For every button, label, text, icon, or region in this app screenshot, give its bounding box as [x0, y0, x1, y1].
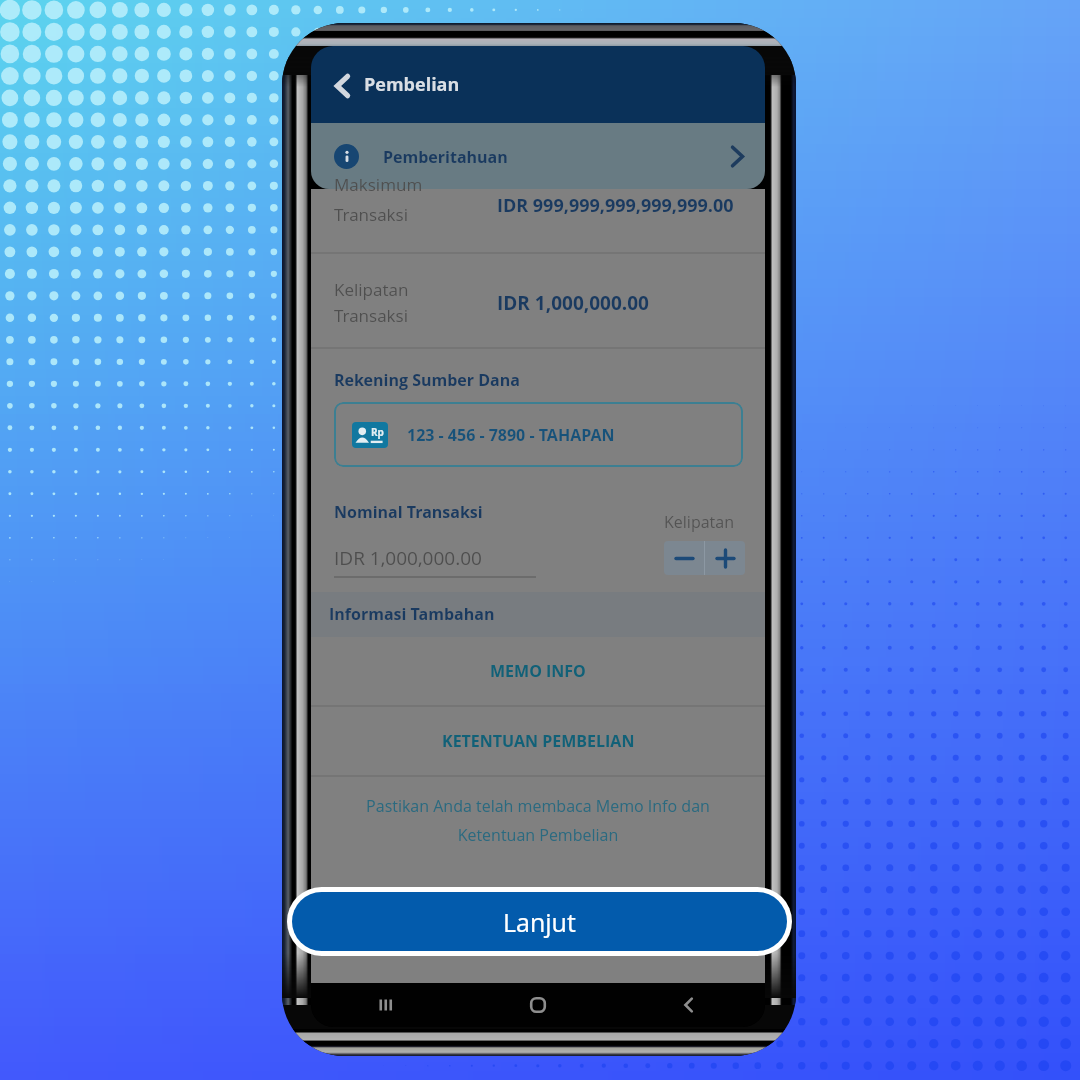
button[interactable]: Home	[521, 988, 555, 1022]
button[interactable]: Back	[672, 988, 706, 1022]
staticText: Kelipatan	[334, 278, 409, 301]
staticText: Nominal Transaksi	[334, 501, 483, 523]
button[interactable]: Recents	[370, 988, 404, 1022]
staticText: Rp	[371, 425, 384, 439]
staticText: 123 - 456 - 7890 - TAHAPAN	[407, 424, 615, 446]
button[interactable]: Lanjut	[292, 892, 787, 951]
staticText: KETENTUAN PEMBELIAN	[442, 730, 635, 752]
staticText: Transaksi	[334, 203, 408, 226]
staticText: IDR 999,999,999,999,999.00	[497, 193, 734, 218]
staticText: IDR 1,000,000.00	[334, 545, 482, 571]
staticText: Rekening Sumber Dana	[334, 369, 520, 391]
button[interactable]: KETENTUAN PEMBELIAN	[311, 706, 765, 775]
button[interactable]: Back	[324, 68, 360, 104]
staticText: IDR 1,000,000.00	[497, 290, 649, 316]
staticText: Maksimum	[334, 173, 423, 196]
staticText: Kelipatan	[664, 511, 734, 533]
staticText: Informasi Tambahan	[329, 603, 495, 625]
button[interactable]: Decrease	[664, 541, 704, 575]
button[interactable]: Rp	[334, 402, 743, 467]
staticText: MEMO INFO	[490, 660, 586, 682]
staticText: Pemberitahuan	[383, 146, 508, 168]
staticText: Transaksi	[334, 304, 408, 327]
staticText: Pembelian	[364, 72, 460, 97]
button[interactable]: MEMO INFO	[311, 637, 765, 705]
staticText: Lanjut	[503, 905, 576, 939]
staticText: Pastikan Anda telah membaca Memo Info da…	[321, 795, 755, 845]
button[interactable]: Increase	[705, 541, 745, 575]
button[interactable]: Pemberitahuan	[311, 123, 765, 189]
